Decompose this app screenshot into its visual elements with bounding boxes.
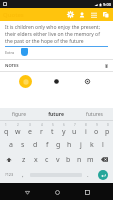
staticText: 8 — [85, 123, 87, 127]
button[interactable]: z — [18, 152, 30, 167]
button[interactable]: c — [41, 152, 52, 167]
staticText: c — [45, 155, 49, 165]
button[interactable]: Settings — [64, 8, 76, 21]
button[interactable]: 5 — [47, 121, 58, 137]
button[interactable]: 7 — [69, 121, 80, 137]
button[interactable]: 8 — [80, 121, 91, 137]
button[interactable]: h — [64, 137, 75, 152]
staticText: q — [4, 127, 9, 137]
button[interactable]: b — [63, 152, 74, 167]
staticText: It is children only who enjoy the presen… — [5, 24, 108, 45]
button[interactable]: futures — [75, 108, 113, 120]
staticText: t — [51, 127, 54, 137]
button[interactable]: 2 — [12, 121, 24, 137]
button[interactable]: Delete — [101, 61, 111, 71]
button[interactable]: Space — [28, 167, 83, 182]
staticText: s — [21, 140, 25, 150]
button[interactable]: List — [88, 8, 100, 21]
button[interactable]: j — [75, 137, 86, 152]
button[interactable]: 6 — [58, 121, 69, 137]
staticText: g — [56, 140, 61, 150]
button[interactable]: future — [37, 108, 75, 120]
staticText: i — [85, 127, 87, 137]
staticText: ?123 — [5, 172, 14, 177]
staticText: r — [40, 127, 43, 137]
button[interactable]: Shift — [0, 152, 18, 167]
staticText: futures — [86, 111, 103, 118]
button[interactable]: a — [5, 137, 17, 152]
staticText: j — [80, 140, 82, 150]
button[interactable]: Comma — [18, 167, 28, 182]
staticText: b — [66, 155, 71, 165]
button[interactable]: l — [97, 137, 108, 152]
button[interactable]: More options — [81, 75, 94, 88]
staticText: v — [56, 155, 60, 165]
button[interactable]: Account — [76, 8, 88, 21]
button[interactable]: Recent apps — [80, 185, 94, 199]
button[interactable]: n — [74, 152, 85, 167]
button[interactable]: g — [53, 137, 64, 152]
staticText: 1 — [5, 123, 7, 127]
staticText: u — [72, 127, 77, 137]
staticText: NOTES — [5, 63, 19, 69]
button[interactable]: ?123 — [0, 167, 18, 182]
staticText: k — [90, 140, 94, 150]
button[interactable]: Enter — [93, 167, 113, 182]
button[interactable]: Favourite — [19, 75, 32, 88]
staticText: f — [46, 140, 49, 150]
staticText: x — [34, 155, 38, 165]
button[interactable]: Back — [20, 185, 34, 199]
staticText: 2 — [17, 123, 19, 127]
staticText: d — [33, 140, 38, 150]
staticText: h — [67, 140, 72, 150]
staticText: o — [94, 127, 99, 137]
staticText: , — [22, 171, 24, 179]
staticText: 4 — [41, 123, 43, 127]
button[interactable]: x — [30, 152, 41, 167]
staticText: 9 — [96, 123, 98, 127]
button[interactable]: figure — [0, 108, 37, 120]
button[interactable]: v — [52, 152, 63, 167]
staticText: figure — [12, 111, 26, 118]
staticText: l — [102, 140, 104, 150]
staticText: n — [77, 155, 82, 165]
button[interactable]: Home — [50, 185, 64, 199]
button[interactable]: f — [41, 137, 53, 152]
staticText: 3 — [29, 123, 31, 127]
button[interactable]: Share — [50, 75, 63, 88]
button[interactable]: 1 — [0, 121, 12, 137]
staticText: 5 — [52, 123, 54, 127]
button[interactable]: m — [85, 152, 96, 167]
button[interactable]: 4 — [36, 121, 47, 137]
button[interactable]: 3 — [24, 121, 36, 137]
staticText: p — [105, 127, 110, 137]
staticText: Extra — [5, 50, 15, 55]
staticText: 0 — [107, 123, 109, 127]
staticText: 7 — [74, 123, 76, 127]
button[interactable]: Period — [83, 167, 93, 182]
button[interactable]: d — [29, 137, 41, 152]
button[interactable]: 0 — [102, 121, 113, 137]
staticText: 9:00 — [103, 2, 111, 7]
button[interactable]: k — [86, 137, 97, 152]
staticText: m — [87, 155, 94, 165]
button[interactable]: Copy — [100, 8, 112, 21]
staticText: 6 — [63, 123, 65, 127]
staticText: future — [48, 111, 64, 118]
button[interactable]: Backspace — [96, 152, 113, 167]
button[interactable]: 9 — [91, 121, 102, 137]
button[interactable]: NOTES — [0, 60, 113, 71]
staticText: z — [22, 155, 26, 165]
staticText: . — [87, 171, 89, 179]
staticText: a — [9, 140, 13, 150]
staticText: w — [15, 127, 21, 137]
staticText: e — [28, 127, 32, 137]
button[interactable]: s — [17, 137, 29, 152]
staticText: y — [62, 127, 66, 137]
